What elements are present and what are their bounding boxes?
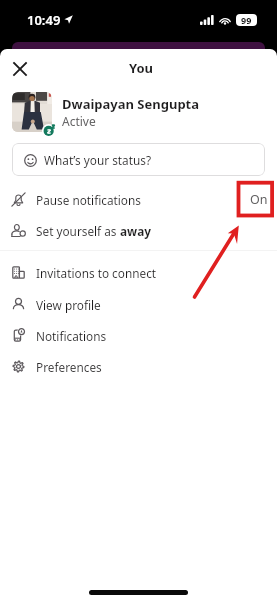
staticText: Invitations to connect bbox=[36, 265, 157, 281]
staticText: away bbox=[120, 223, 151, 239]
button[interactable]: Notifications bbox=[0, 320, 277, 351]
button[interactable]: Preferences bbox=[0, 351, 277, 382]
button[interactable]: Close bbox=[7, 56, 32, 81]
staticText: View profile bbox=[36, 297, 101, 313]
staticText: Pause notifications bbox=[36, 192, 141, 208]
staticText: Notifications bbox=[36, 328, 107, 344]
staticText: On bbox=[250, 191, 268, 208]
button[interactable]: Dwaipayan Sengupta bbox=[0, 87, 277, 137]
button[interactable]: Invitations to connect bbox=[0, 257, 277, 288]
button[interactable]: Pause notifications bbox=[0, 184, 277, 215]
staticText: Set yourself as bbox=[36, 223, 120, 239]
staticText: 10:49 bbox=[27, 11, 61, 29]
button[interactable]: View profile bbox=[0, 289, 277, 320]
button[interactable]: What’s your status? bbox=[12, 143, 265, 176]
staticText: Active bbox=[62, 113, 96, 129]
staticText: You bbox=[129, 59, 154, 77]
staticText: Preferences bbox=[36, 359, 102, 375]
staticText: Dwaipayan Sengupta bbox=[62, 95, 200, 113]
staticText: What’s your status? bbox=[44, 152, 152, 168]
staticText: 99 bbox=[241, 14, 252, 26]
button[interactable]: Set yourself as bbox=[0, 215, 277, 246]
